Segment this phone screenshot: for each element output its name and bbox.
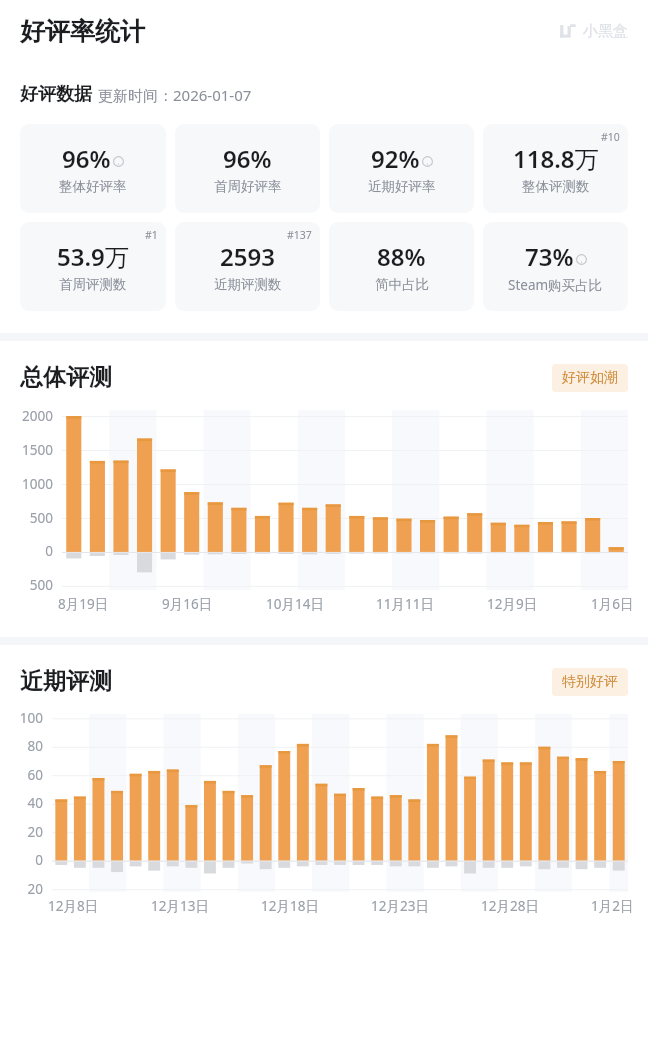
staticText: 小黑盒 [583,22,628,41]
staticText: 53.9万 [57,240,129,273]
staticText: 1000 [22,475,53,493]
staticText: 12月9日 [487,595,538,613]
staticText: 近期评测 [20,667,112,696]
staticText: 11月11日 [376,595,434,613]
staticText: 简中占比 [375,276,429,293]
staticText: 8月19日 [58,595,109,613]
staticText: 好评数据 [20,83,92,106]
staticText: Steam购买占比 [508,276,603,294]
staticText: 60 [27,766,43,784]
staticText: 96% [62,142,111,175]
staticText: 整体评测数 [522,178,590,195]
staticText: 500 [29,576,53,594]
staticText: 2593 [220,240,275,273]
staticText: 40 [27,794,43,812]
staticText: 20 [27,823,43,841]
button[interactable]: 88% [329,222,474,311]
button[interactable]: 96% [175,124,320,213]
staticText: 96% [223,142,272,175]
staticText: 1500 [22,441,53,459]
staticText: 近期好评率 [368,178,436,195]
button[interactable]: 小黑盒 [553,16,634,47]
staticText: 12月8日 [48,897,99,915]
staticText: 10月14日 [266,595,324,613]
staticText: 好评率统计 [20,16,145,47]
button[interactable]: #10 [483,124,628,213]
button[interactable]: 92% [329,124,474,213]
staticText: 92% [371,142,420,175]
staticText: #1 [145,228,158,242]
staticText: 首周评测数 [59,276,127,293]
staticText: #137 [287,228,312,242]
staticText: 118.8万 [513,142,599,175]
staticText: 总体评测 [20,363,112,392]
staticText: 首周好评率 [214,178,282,195]
button[interactable]: 96% [20,124,166,213]
staticText: 73% [525,240,574,273]
staticText: 2000 [22,407,53,425]
staticText: 12月28日 [481,897,539,915]
staticText: 500 [29,509,53,527]
staticText: 1月6日 [591,595,634,613]
staticText: 88% [377,240,426,273]
staticText: #10 [601,130,620,144]
button[interactable]: #1 [20,222,166,311]
staticText: 0 [35,851,43,869]
staticText: 12月23日 [371,897,429,915]
button[interactable]: 好评如潮 [552,364,628,392]
button[interactable]: 特别好评 [552,668,628,696]
staticText: 12月18日 [261,897,319,915]
staticText: 更新时间：2026-01-07 [98,85,252,105]
staticText: 特别好评 [562,673,618,691]
staticText: 12月13日 [151,897,209,915]
staticText: 80 [27,737,43,755]
staticText: 整体好评率 [59,178,127,195]
staticText: 100 [19,709,43,727]
staticText: 20 [27,880,43,898]
button[interactable]: 73% [483,222,628,311]
staticText: 好评如潮 [562,369,618,387]
staticText: 0 [45,542,53,560]
staticText: 1月2日 [591,897,634,915]
staticText: 近期评测数 [214,276,282,293]
staticText: 9月16日 [162,595,213,613]
button[interactable]: #137 [175,222,320,311]
